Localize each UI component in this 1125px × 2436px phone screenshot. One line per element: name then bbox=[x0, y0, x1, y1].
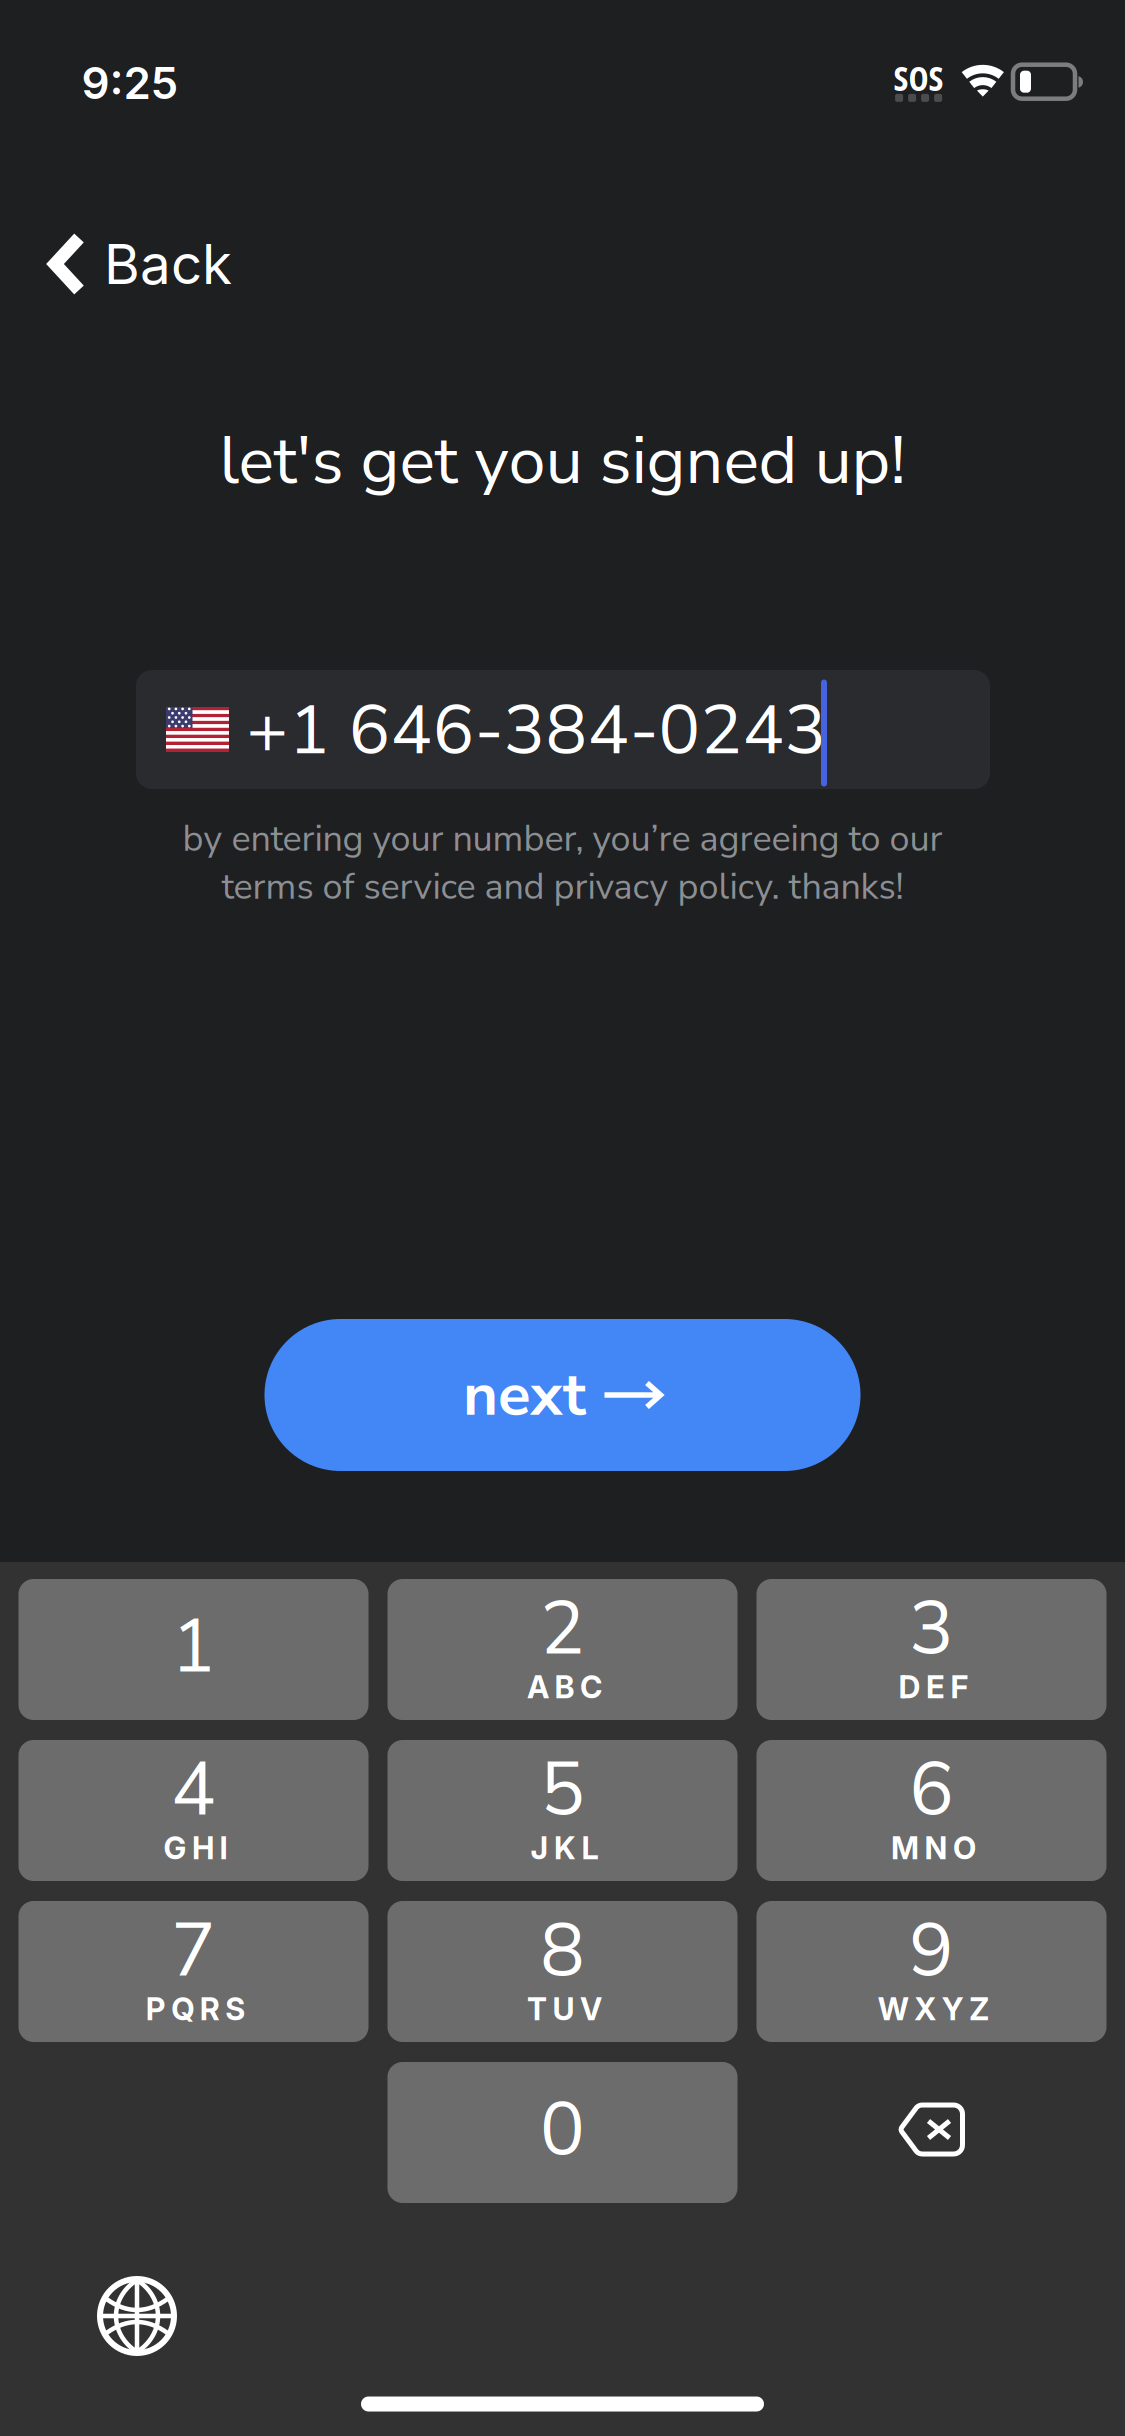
button[interactable]: 8 bbox=[387, 1901, 737, 2042]
button[interactable]: 7 bbox=[18, 1901, 368, 2042]
button[interactable]: Switch keyboard bbox=[97, 2276, 177, 2356]
button[interactable]: next bbox=[264, 1319, 860, 1471]
staticText: WXYZ bbox=[878, 1990, 989, 2027]
staticText: MNO bbox=[891, 1829, 976, 1866]
staticText: Back bbox=[104, 231, 232, 297]
staticText: 1 bbox=[171, 1596, 216, 1698]
button[interactable]: 2 bbox=[387, 1579, 737, 1720]
staticText: GHI bbox=[163, 1829, 227, 1866]
staticText: 6 bbox=[909, 1739, 954, 1841]
button[interactable]: Back bbox=[0, 202, 230, 322]
button[interactable]: Delete bbox=[756, 2062, 1106, 2203]
staticText: 9:25 bbox=[81, 56, 178, 110]
button[interactable]: 9 bbox=[756, 1901, 1106, 2042]
button[interactable]: 6 bbox=[756, 1740, 1106, 1881]
staticText: 7 bbox=[171, 1900, 216, 2002]
button[interactable]: 0 bbox=[387, 2062, 737, 2203]
button[interactable]: 4 bbox=[18, 1740, 368, 1881]
staticText: PQRS bbox=[146, 1990, 245, 2027]
staticText: next bbox=[463, 1354, 586, 1436]
staticText: ABC bbox=[527, 1668, 602, 1705]
button[interactable]: 1 bbox=[18, 1579, 368, 1720]
button[interactable]: 3 bbox=[756, 1579, 1106, 1720]
staticText: 9 bbox=[909, 1900, 954, 2002]
staticText: 8 bbox=[540, 1900, 585, 2002]
staticText: 0 bbox=[540, 2079, 585, 2181]
staticText: by entering your number, you’re agreeing… bbox=[182, 814, 942, 863]
staticText: 3 bbox=[909, 1578, 954, 1680]
staticText: let's get you signed up! bbox=[219, 415, 905, 506]
staticText: TUV bbox=[527, 1990, 602, 2027]
staticText: 2 bbox=[540, 1578, 585, 1680]
staticText: DEF bbox=[898, 1668, 968, 1705]
staticText: terms of service and privacy policy. tha… bbox=[221, 862, 903, 911]
staticText: 4 bbox=[171, 1739, 216, 1841]
button[interactable]: 5 bbox=[387, 1740, 737, 1881]
staticText: SOS bbox=[894, 55, 944, 101]
staticText: +1 646-384-0243 bbox=[246, 683, 826, 778]
staticText: JKL bbox=[530, 1829, 598, 1866]
staticText: 5 bbox=[540, 1739, 585, 1841]
